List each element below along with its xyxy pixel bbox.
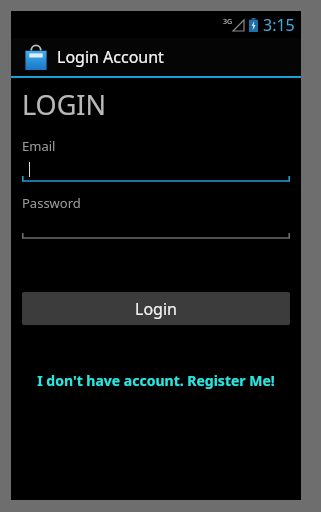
staticText: I don't have account. Register Me!: [37, 371, 275, 390]
button[interactable]: I don't have account. Register Me!: [22, 371, 290, 390]
staticText: 3G: [223, 17, 233, 27]
staticText: Password: [22, 194, 81, 212]
staticText: Login: [135, 298, 177, 320]
staticText: Login Account: [57, 46, 164, 68]
button[interactable]: [22, 155, 290, 182]
button[interactable]: Login: [22, 292, 290, 325]
staticText: Email: [22, 137, 56, 155]
staticText: 3:15: [263, 14, 295, 36]
staticText: LOGIN: [22, 86, 107, 123]
button[interactable]: [22, 212, 290, 239]
